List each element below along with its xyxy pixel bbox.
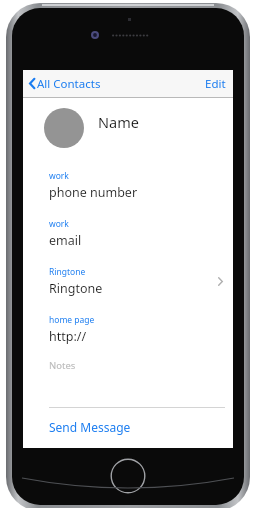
staticText: Notes	[49, 359, 76, 372]
button[interactable]: Notes	[23, 345, 233, 372]
staticText: Ringtone	[49, 266, 86, 278]
staticText: http://	[49, 328, 87, 345]
staticText: phone number	[49, 184, 138, 201]
button[interactable]: home page	[23, 297, 233, 345]
button[interactable]: Ringtone	[23, 249, 233, 297]
staticText: All Contacts	[37, 76, 101, 92]
staticText: home page	[49, 314, 95, 326]
button[interactable]: Contact photo	[44, 108, 84, 148]
button[interactable]: work	[23, 168, 233, 201]
other: Home	[110, 458, 146, 494]
button[interactable]: work	[23, 201, 233, 249]
staticText: email	[49, 232, 82, 249]
staticText: work	[49, 218, 69, 230]
button[interactable]: Send Message	[23, 408, 233, 448]
staticText: Edit	[205, 76, 226, 92]
button[interactable]: Edit	[198, 70, 233, 97]
staticText: work	[49, 170, 69, 182]
staticText: Name	[98, 112, 139, 132]
staticText: Send Message	[49, 419, 131, 435]
staticText: Ringtone	[49, 280, 103, 297]
button[interactable]: All Contacts	[23, 70, 107, 97]
